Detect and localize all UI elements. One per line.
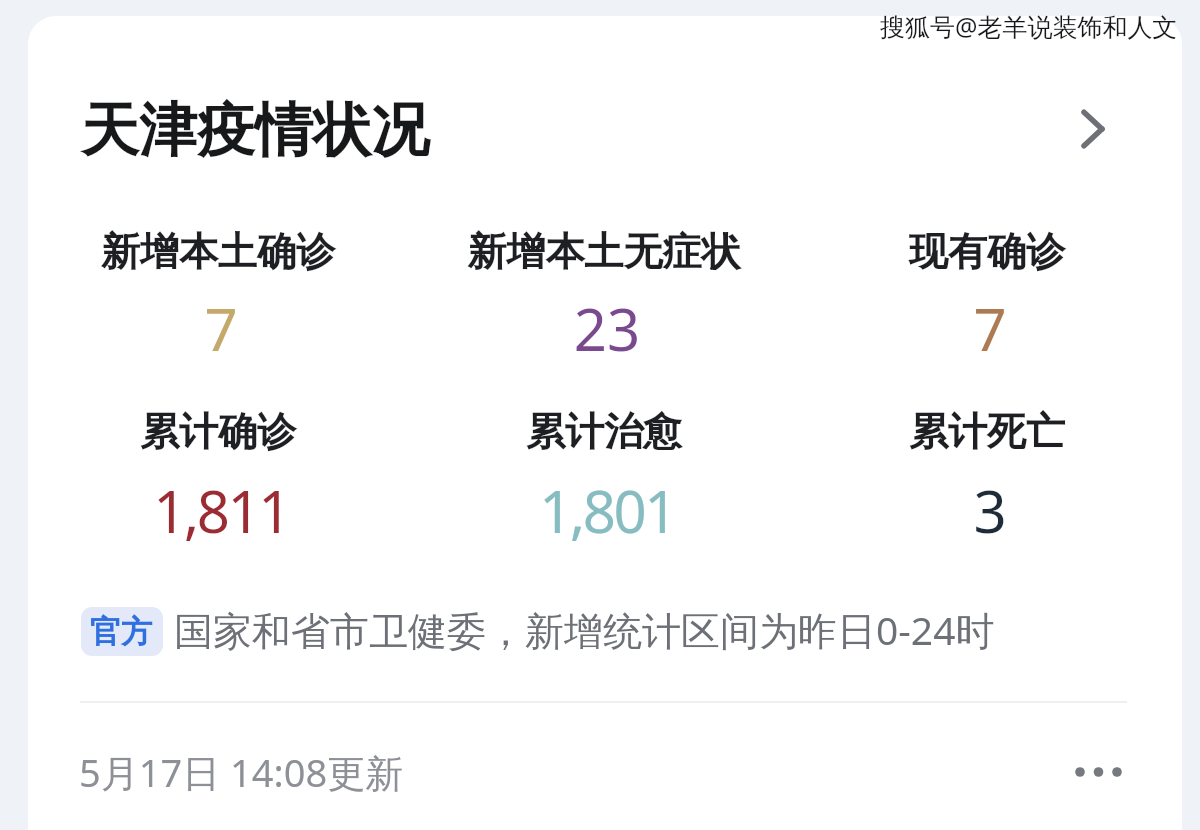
button[interactable] [412, 205, 796, 375]
button[interactable]: 5月17日 14:08更新 [79, 746, 404, 798]
staticText: 3 [730, 471, 1200, 550]
staticText: 1,801 [347, 471, 867, 550]
button[interactable]: View details [1050, 94, 1122, 166]
staticText: 新增本土无症状 [344, 227, 864, 276]
staticText: 5月17日 14:08更新 [79, 746, 404, 798]
staticText: 搜狐号@老羊说装饰和人文 [880, 9, 1178, 43]
staticText: 现有确诊 [727, 227, 1200, 276]
button[interactable]: 官方 [81, 607, 163, 656]
staticText: 7 [0, 289, 481, 368]
staticText: 累计治愈 [344, 407, 864, 456]
staticText: 23 [347, 289, 867, 368]
button[interactable]: More options [1060, 748, 1136, 796]
button[interactable] [795, 385, 1179, 555]
button[interactable] [412, 385, 796, 555]
button[interactable] [795, 205, 1179, 375]
staticText: 7 [730, 289, 1200, 368]
staticText: 新增本土确诊 [0, 227, 478, 276]
staticText: 累计确诊 [0, 407, 478, 456]
button[interactable] [28, 70, 1182, 180]
staticText: 国家和省市卫健委，新增统计区间为昨日0-24时 [174, 603, 995, 656]
button[interactable] [26, 205, 410, 375]
staticText: 官方 [90, 612, 152, 651]
staticText: 天津疫情状况 [81, 94, 429, 167]
staticText: 1,811 [0, 471, 481, 550]
staticText: 累计死亡 [727, 407, 1200, 456]
button[interactable] [26, 385, 410, 555]
